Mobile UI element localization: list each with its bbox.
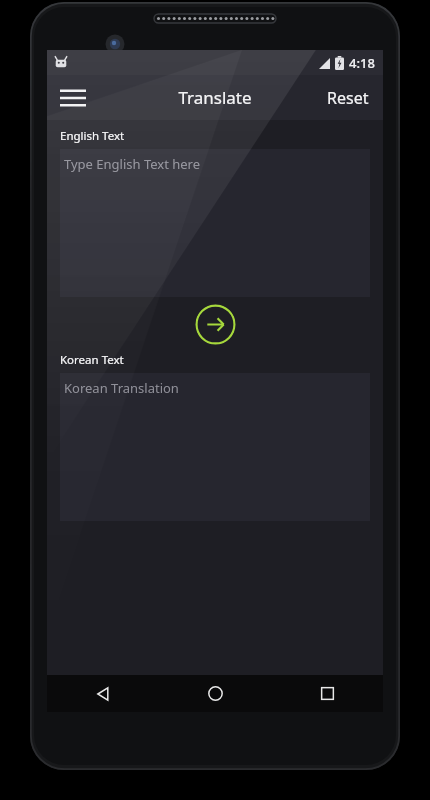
staticText: Type English Text here — [64, 155, 201, 173]
button[interactable]: Translate — [195, 304, 236, 345]
button[interactable]: Back — [47, 675, 159, 712]
button[interactable]: Korean Translation — [60, 373, 370, 521]
staticText: English Text — [60, 128, 125, 144]
button[interactable]: Home — [159, 675, 271, 712]
staticText: Reset — [327, 87, 369, 109]
staticText: Korean Translation — [64, 379, 179, 397]
staticText: Translate — [178, 86, 252, 109]
button[interactable]: Open navigation menu — [47, 75, 99, 120]
button[interactable]: Recent apps — [271, 675, 383, 712]
button[interactable]: Type English Text here — [60, 149, 370, 297]
staticText: 4:18 — [349, 54, 375, 72]
button[interactable]: Reset — [313, 75, 383, 120]
staticText: Korean Text — [60, 352, 124, 368]
